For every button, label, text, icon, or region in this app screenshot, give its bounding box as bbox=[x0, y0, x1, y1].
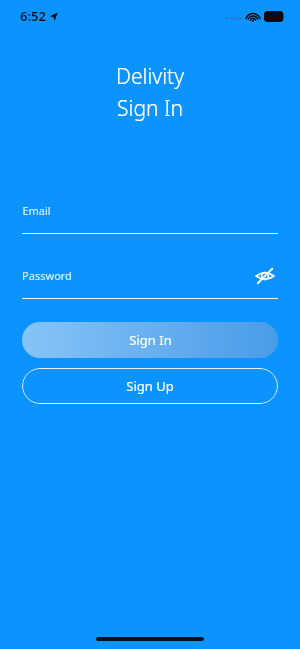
button[interactable]: Sign Up bbox=[22, 368, 278, 404]
button[interactable]: Email bbox=[22, 196, 278, 234]
staticText: Sign In bbox=[129, 331, 172, 349]
button[interactable]: Password bbox=[22, 261, 278, 299]
staticText: Password bbox=[22, 268, 72, 283]
staticText: 6:52 bbox=[20, 7, 46, 25]
staticText: Sign Up bbox=[126, 377, 174, 395]
staticText: Delivity bbox=[116, 62, 184, 91]
staticText: Email bbox=[22, 203, 51, 218]
button[interactable]: Sign In bbox=[22, 322, 278, 358]
staticText: Sign In bbox=[117, 94, 183, 123]
button[interactable]: Show password bbox=[252, 263, 278, 289]
